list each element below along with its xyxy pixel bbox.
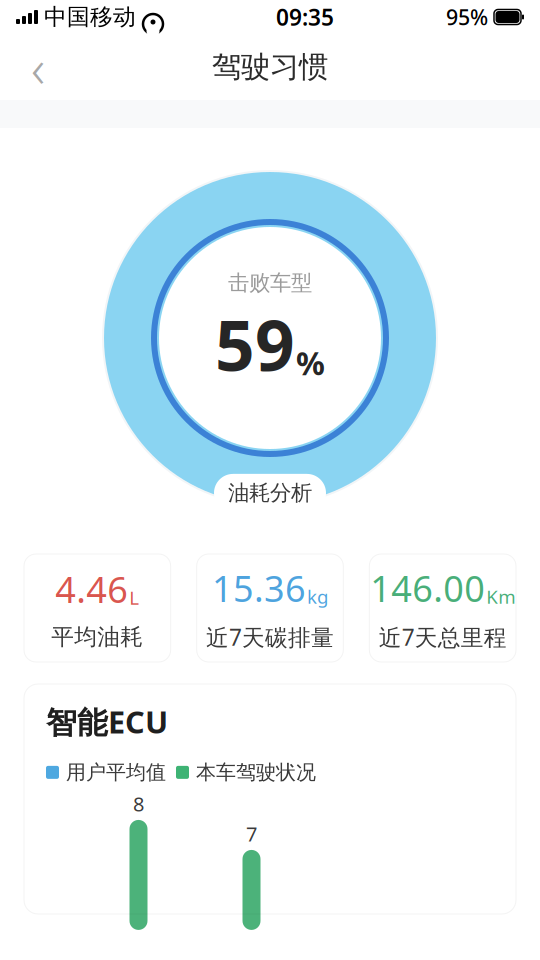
- staticText: 油耗分析: [228, 480, 312, 506]
- button[interactable]: 146.00: [369, 554, 516, 662]
- staticText: 95%: [446, 3, 488, 31]
- staticText: %: [296, 342, 325, 384]
- staticText: 7: [246, 820, 257, 847]
- staticText: L: [129, 585, 139, 610]
- staticText: 驾驶习惯: [212, 49, 328, 85]
- staticText: 146.00: [370, 564, 485, 612]
- button[interactable]: Back: [12, 41, 64, 93]
- button[interactable]: 15.36: [197, 554, 343, 662]
- staticText: 09:35: [276, 2, 334, 32]
- staticText: 15.36: [212, 564, 306, 612]
- staticText: 智能ECU: [46, 701, 168, 742]
- staticText: 中国移动: [44, 3, 136, 31]
- staticText: 用户平均值: [66, 760, 166, 785]
- staticText: 4.46: [55, 565, 128, 613]
- staticText: 59: [215, 298, 295, 390]
- staticText: 近7天碳排量: [206, 622, 334, 652]
- staticText: 近7天总里程: [379, 622, 507, 652]
- button[interactable]: 4.46: [24, 554, 171, 662]
- staticText: Km: [486, 584, 515, 609]
- button[interactable]: 油耗分析: [214, 474, 326, 512]
- staticText: 击败车型: [228, 270, 312, 296]
- staticText: 本车驾驶状况: [196, 760, 316, 785]
- staticText: ‹: [31, 32, 45, 102]
- staticText: kg: [307, 584, 328, 609]
- staticText: 平均油耗: [51, 623, 143, 651]
- staticText: 8: [133, 790, 144, 817]
